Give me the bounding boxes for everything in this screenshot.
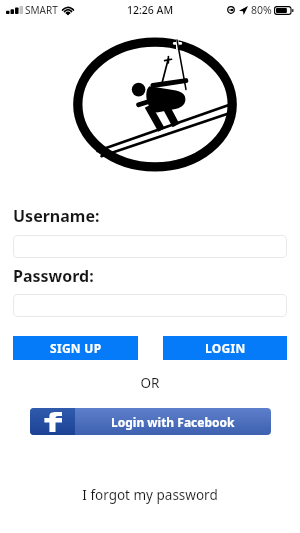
staticText: Password: [13, 265, 94, 287]
staticText: SIGN UP [50, 340, 102, 356]
staticText: 80% [251, 3, 272, 17]
staticText: OR [0, 374, 300, 392]
staticText: SMART [25, 3, 58, 17]
staticText: I forgot my password [0, 486, 300, 504]
button[interactable]: LOGIN [163, 336, 287, 360]
staticText: Login with Facebook [111, 414, 235, 430]
button[interactable] [13, 294, 287, 317]
staticText: Username: [13, 205, 100, 227]
button[interactable]: SIGN UP [13, 336, 138, 360]
button[interactable] [13, 235, 287, 258]
staticText: LOGIN [205, 340, 246, 356]
staticText: 12:26 AM [127, 3, 174, 17]
button[interactable]: Login with Facebook [30, 408, 271, 435]
